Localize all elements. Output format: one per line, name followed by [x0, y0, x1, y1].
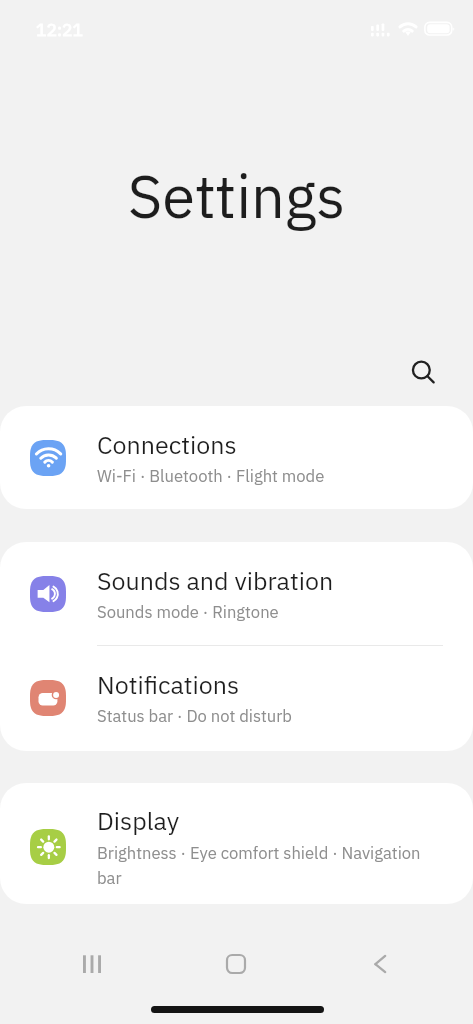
button[interactable]: Display	[0, 783, 473, 904]
button[interactable]: Recent apps	[56, 939, 128, 989]
staticText: Connections	[97, 428, 237, 461]
button[interactable]: Notifications	[0, 646, 473, 751]
button[interactable]: Back	[344, 939, 416, 989]
staticText: Status bar · Do not disturb	[97, 705, 437, 727]
button[interactable]: Home	[200, 939, 272, 989]
staticText: Sounds and vibration	[97, 564, 334, 597]
button[interactable]: Search	[402, 351, 446, 395]
staticText: Settings	[0, 157, 473, 234]
staticText: Display	[97, 804, 180, 837]
staticText: Brightness · Eye comfort shield · Naviga…	[97, 842, 445, 889]
staticText: Notifications	[97, 668, 240, 701]
button[interactable]: Connections	[0, 406, 473, 509]
button[interactable]: Sounds and vibration	[0, 542, 473, 646]
staticText: Wi-Fi · Bluetooth · Flight mode	[97, 465, 437, 487]
staticText: Sounds mode · Ringtone	[97, 601, 437, 623]
staticText: 12:21	[36, 18, 84, 41]
